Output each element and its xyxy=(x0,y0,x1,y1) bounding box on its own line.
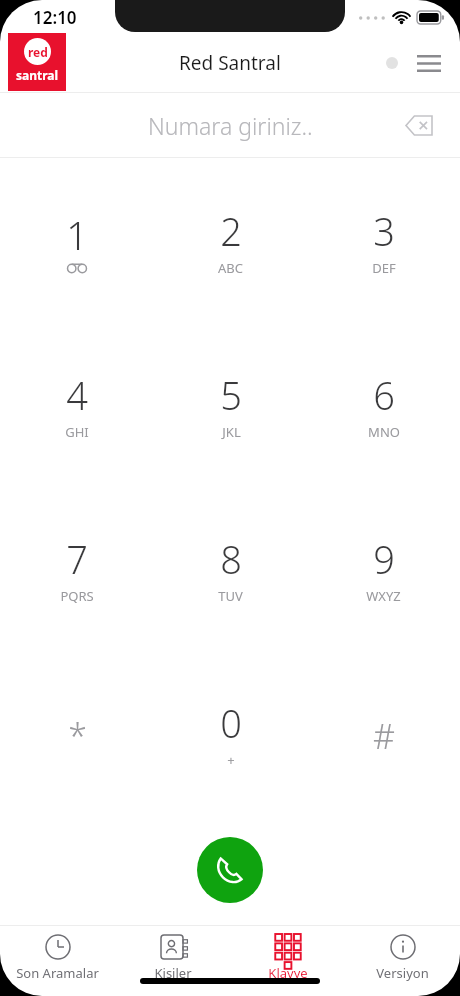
staticText: 7 xyxy=(66,533,88,585)
staticText: 6 xyxy=(373,369,395,421)
staticText: 1 xyxy=(66,209,88,261)
staticText: 2 xyxy=(220,205,242,257)
staticText: Klavye xyxy=(268,964,308,982)
button[interactable]: Son Aramalar xyxy=(0,926,115,996)
staticText: JKL xyxy=(222,423,241,441)
staticText: red xyxy=(28,44,48,60)
button[interactable]: 2 xyxy=(154,158,307,323)
staticText: Kişiler xyxy=(154,964,192,982)
button[interactable]: 6 xyxy=(307,323,460,487)
button[interactable]: 3 xyxy=(307,158,460,323)
staticText: ABC xyxy=(218,259,243,277)
button[interactable]: # xyxy=(307,651,460,815)
button[interactable]: * xyxy=(0,651,154,815)
staticText: Numara giriniz.. xyxy=(148,110,313,141)
button[interactable]: 1 xyxy=(0,158,154,323)
button[interactable]: 0 xyxy=(154,651,307,815)
staticText: # xyxy=(373,713,395,759)
button[interactable]: Red Santral logo xyxy=(8,33,66,91)
staticText: 8 xyxy=(220,533,242,585)
staticText: santral xyxy=(16,67,59,83)
staticText: Son Aramalar xyxy=(16,964,99,982)
staticText: * xyxy=(68,713,87,759)
staticText: 9 xyxy=(373,533,395,585)
staticText: 0 xyxy=(220,697,242,749)
button[interactable]: 9 xyxy=(307,487,460,651)
button[interactable]: 7 xyxy=(0,487,154,651)
button[interactable]: 5 xyxy=(154,323,307,487)
staticText: Red Santral xyxy=(179,50,281,76)
button[interactable]: Numara giriniz.. xyxy=(0,93,460,157)
button[interactable]: Kişiler xyxy=(115,926,230,996)
staticText: 4 xyxy=(66,369,88,421)
button[interactable]: Backspace xyxy=(400,105,440,145)
staticText: Versiyon xyxy=(376,964,429,982)
staticText: 5 xyxy=(220,369,242,421)
button[interactable]: Menu xyxy=(412,46,446,80)
staticText: GHI xyxy=(65,423,89,441)
staticText: DEF xyxy=(372,259,396,277)
button[interactable]: 8 xyxy=(154,487,307,651)
button[interactable]: Versiyon xyxy=(345,926,460,996)
staticText: WXYZ xyxy=(366,587,401,605)
button[interactable]: Klavye xyxy=(230,926,345,996)
staticText: TUV xyxy=(218,587,243,605)
staticText: 12:10 xyxy=(33,6,77,29)
staticText: MNO xyxy=(368,423,400,441)
staticText: + xyxy=(227,751,235,769)
button[interactable]: 4 xyxy=(0,323,154,487)
button[interactable]: Call xyxy=(197,837,263,903)
staticText: PQRS xyxy=(60,587,94,605)
staticText: 3 xyxy=(373,205,395,257)
